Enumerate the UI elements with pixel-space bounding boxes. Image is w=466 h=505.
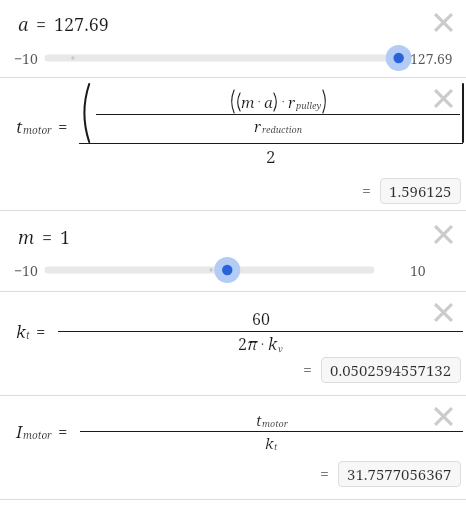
button[interactable]: Slider (48, 43, 404, 73)
staticText: 1.596125 (389, 181, 452, 201)
staticText: = (362, 180, 371, 202)
staticText: 10 (410, 261, 462, 280)
staticText: = (320, 463, 329, 485)
staticText: 2 (266, 145, 276, 168)
button[interactable]: Delete expression (426, 295, 460, 329)
staticText: m (18, 225, 35, 250)
staticText: a (264, 92, 273, 112)
staticText: = (303, 359, 312, 381)
staticText: v (278, 342, 283, 354)
button[interactable]: a (0, 0, 466, 77)
button[interactable]: 1.596125 (380, 178, 461, 204)
staticText: k (268, 333, 278, 355)
staticText: I (16, 420, 23, 443)
staticText: motor (23, 123, 52, 137)
staticText: a (18, 12, 29, 37)
staticText: = (42, 225, 53, 250)
staticText: · (255, 94, 264, 109)
button[interactable]: 31.7577056367 (338, 461, 461, 487)
staticText: 1 (60, 225, 71, 250)
staticText: 127.69 (410, 49, 462, 68)
staticText: 0.0502594557132 (330, 360, 452, 380)
staticText: 60 (252, 308, 270, 330)
staticText: t (16, 115, 23, 138)
staticText: pulley (296, 99, 322, 111)
staticText: k (265, 433, 274, 453)
button[interactable]: I (0, 396, 466, 499)
staticText: t (274, 440, 278, 452)
staticText: · (279, 94, 288, 109)
staticText: = (36, 12, 47, 37)
staticText: r (254, 116, 262, 136)
staticText: m (241, 92, 255, 112)
button[interactable]: 0.0502594557132 (321, 357, 461, 383)
staticText: −10 (14, 261, 38, 280)
staticText: t (26, 328, 30, 342)
staticText: motor (262, 417, 288, 429)
staticText: motor (23, 428, 52, 442)
staticText: = (58, 420, 68, 443)
button[interactable]: m (0, 211, 466, 291)
button[interactable]: Delete expression (426, 81, 460, 115)
staticText: = (58, 115, 68, 138)
staticText: 31.7577056367 (347, 464, 452, 484)
button[interactable]: Delete expression (426, 399, 460, 433)
staticText: t (256, 410, 262, 430)
button[interactable]: t (0, 78, 466, 210)
staticText: k (16, 320, 26, 343)
button[interactable]: Delete expression (426, 217, 460, 251)
staticText: 127.69 (54, 12, 109, 37)
staticText: · (258, 336, 268, 352)
staticText: = (36, 320, 46, 343)
staticText: 2 (238, 333, 247, 355)
button[interactable]: k (0, 292, 466, 395)
button[interactable]: Slider (48, 255, 404, 285)
staticText: π (247, 333, 258, 355)
staticText: −10 (14, 49, 38, 68)
staticText: reduction (262, 123, 303, 135)
staticText: r (288, 92, 296, 112)
button[interactable]: Delete expression (426, 5, 460, 39)
